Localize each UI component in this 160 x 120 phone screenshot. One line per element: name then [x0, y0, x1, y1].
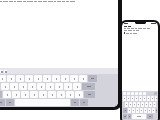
button[interactable]: [79, 75, 87, 82]
button[interactable]: [55, 83, 63, 90]
button[interactable]: [25, 75, 33, 82]
button[interactable]: [145, 102, 148, 107]
button[interactable]: [131, 96, 134, 101]
button[interactable]: [140, 108, 143, 113]
button[interactable]: [125, 102, 128, 107]
button[interactable]: [147, 114, 153, 119]
button[interactable]: [70, 75, 78, 82]
button[interactable]: [133, 102, 136, 107]
button[interactable]: [144, 108, 147, 113]
button[interactable]: [123, 96, 126, 101]
button[interactable]: [57, 91, 65, 98]
button[interactable]: [149, 102, 152, 107]
button[interactable]: [39, 91, 47, 98]
button[interactable]: [137, 102, 140, 107]
button[interactable]: [128, 114, 131, 119]
button[interactable]: [43, 75, 51, 82]
button[interactable]: [88, 75, 97, 82]
button[interactable]: [37, 83, 45, 90]
button[interactable]: [34, 75, 42, 82]
button[interactable]: [136, 108, 139, 113]
button[interactable]: [143, 96, 146, 101]
button[interactable]: [156, 108, 157, 113]
button[interactable]: [139, 96, 142, 101]
button[interactable]: [48, 91, 56, 98]
button[interactable]: [66, 91, 74, 98]
button[interactable]: [82, 83, 95, 90]
button[interactable]: [3, 91, 11, 98]
button[interactable]: [21, 91, 29, 98]
button[interactable]: [19, 83, 27, 90]
button[interactable]: Hide keyboard: [154, 92, 157, 95]
button[interactable]: [135, 96, 138, 101]
button[interactable]: [7, 75, 15, 82]
button[interactable]: [123, 108, 127, 113]
button[interactable]: [71, 99, 79, 106]
button[interactable]: [1, 83, 9, 90]
button[interactable]: [16, 75, 24, 82]
button[interactable]: [153, 102, 156, 107]
button[interactable]: [12, 91, 20, 98]
button[interactable]: [0, 99, 5, 106]
button[interactable]: [28, 83, 36, 90]
button[interactable]: [64, 83, 72, 90]
button[interactable]: [73, 83, 81, 90]
button[interactable]: [30, 91, 38, 98]
button[interactable]: [141, 102, 144, 107]
button[interactable]: [61, 75, 69, 82]
button[interactable]: [84, 91, 95, 98]
button[interactable]: [10, 83, 18, 90]
button[interactable]: [132, 108, 135, 113]
button[interactable]: [52, 75, 60, 82]
button[interactable]: [75, 91, 83, 98]
button[interactable]: Format tool 5: [4, 70, 7, 73]
button[interactable]: [123, 114, 127, 119]
button[interactable]: [151, 96, 154, 101]
button[interactable]: [80, 99, 88, 106]
button[interactable]: [155, 96, 157, 101]
button[interactable]: [128, 108, 131, 113]
button[interactable]: [46, 83, 54, 90]
button[interactable]: [6, 99, 14, 106]
button[interactable]: [132, 114, 146, 119]
button[interactable]: [129, 102, 132, 107]
button[interactable]: [148, 108, 151, 113]
button[interactable]: [127, 96, 130, 101]
button[interactable]: [152, 108, 155, 113]
button[interactable]: [0, 75, 6, 82]
button[interactable]: [147, 96, 150, 101]
button[interactable]: Format tool 4: [0, 70, 3, 73]
